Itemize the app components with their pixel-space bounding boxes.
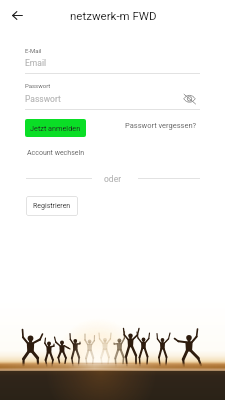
staticText: Jetzt anmelden	[30, 124, 81, 133]
staticText: Passwort vergessen?	[125, 121, 197, 130]
staticText: netzwerk-m FWD	[70, 9, 157, 22]
button[interactable]: Show password	[181, 90, 197, 106]
staticText: Passwort	[25, 94, 61, 104]
button[interactable]: Jetzt anmelden	[25, 119, 86, 137]
staticText: Passwort	[25, 82, 51, 89]
staticText: Account wechseln	[27, 149, 85, 157]
staticText: Registrieren	[33, 202, 71, 210]
button[interactable]: Back	[3, 1, 31, 29]
staticText: oder	[104, 174, 122, 184]
button[interactable]: Registrieren	[26, 196, 78, 216]
button[interactable]: Passwort vergessen?	[125, 121, 197, 130]
staticText: E-Mail	[25, 47, 42, 54]
button[interactable]: Account wechseln	[27, 149, 85, 157]
staticText: Email	[25, 58, 47, 68]
